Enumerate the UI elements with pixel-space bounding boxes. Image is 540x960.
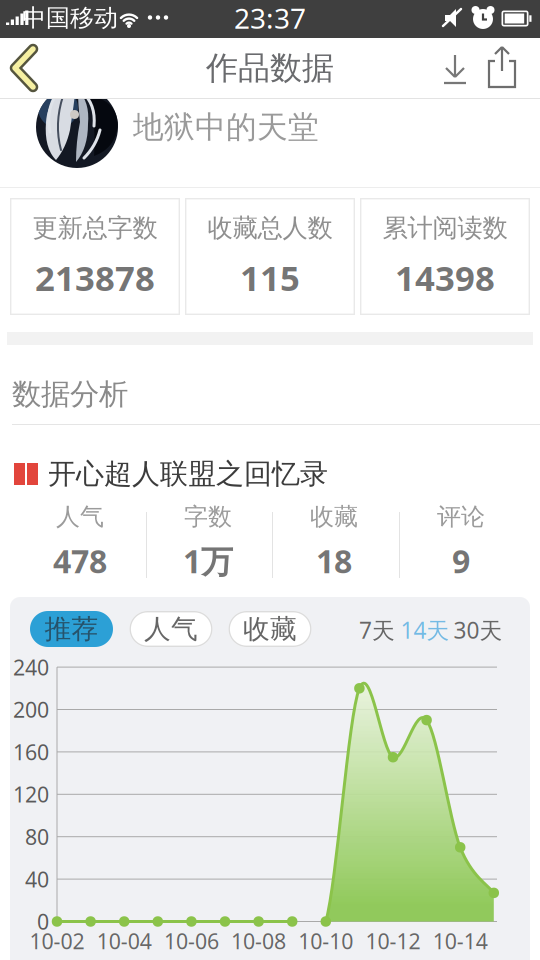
staticText: 1万: [183, 539, 233, 582]
staticText: 18: [316, 539, 352, 582]
staticText: 10-02: [29, 927, 84, 955]
staticText: 478: [53, 539, 107, 582]
staticText: 10-14: [433, 927, 488, 955]
staticText: 字数: [184, 502, 232, 531]
staticText: 213878: [35, 254, 155, 300]
staticText: 40: [25, 865, 49, 893]
button[interactable]: 30天: [453, 615, 502, 645]
button[interactable]: 返回: [5, 43, 49, 93]
staticText: 收藏: [310, 502, 358, 531]
staticText: 240: [13, 653, 49, 681]
button[interactable]: 14天: [400, 615, 449, 645]
button[interactable]: 人气: [129, 611, 212, 647]
button[interactable]: 推荐: [30, 611, 113, 647]
staticText: 评论: [437, 502, 485, 531]
staticText: 更新总字数: [32, 212, 157, 243]
button[interactable]: 7天: [359, 615, 395, 645]
staticText: 累计阅读数: [382, 212, 507, 243]
staticText: 10-04: [97, 927, 152, 955]
staticText: 推荐: [44, 613, 98, 645]
staticText: 人气: [144, 613, 198, 645]
button[interactable]: 下载: [435, 48, 475, 92]
staticText: 30天: [453, 615, 502, 645]
staticText: 地狱中的天堂: [133, 108, 319, 146]
staticText: 10-06: [164, 927, 219, 955]
staticText: 23:37: [234, 0, 306, 37]
staticText: 10-08: [231, 927, 286, 955]
staticText: 作品数据: [206, 48, 334, 88]
staticText: 115: [240, 254, 300, 300]
button[interactable]: 分享: [482, 45, 522, 93]
staticText: 0: [37, 907, 49, 936]
staticText: 数据分析: [12, 376, 128, 412]
staticText: 9: [452, 539, 470, 582]
staticText: 7天: [359, 615, 395, 645]
staticText: 10-10: [298, 927, 353, 955]
staticText: 200: [13, 695, 49, 724]
button[interactable]: 收藏: [228, 611, 311, 647]
staticText: 10-12: [365, 927, 420, 955]
staticText: 收藏: [243, 613, 297, 645]
staticText: 人气: [56, 502, 104, 531]
staticText: 中国移动: [22, 3, 118, 33]
staticText: 收藏总人数: [207, 212, 332, 243]
staticText: 80: [25, 822, 49, 851]
staticText: 开心超人联盟之回忆录: [48, 457, 328, 491]
staticText: 120: [13, 780, 49, 808]
staticText: 160: [13, 738, 49, 766]
staticText: 14天: [400, 615, 449, 645]
button[interactable]: 开心超人联盟之回忆录: [14, 452, 540, 496]
staticText: 14398: [395, 254, 495, 300]
